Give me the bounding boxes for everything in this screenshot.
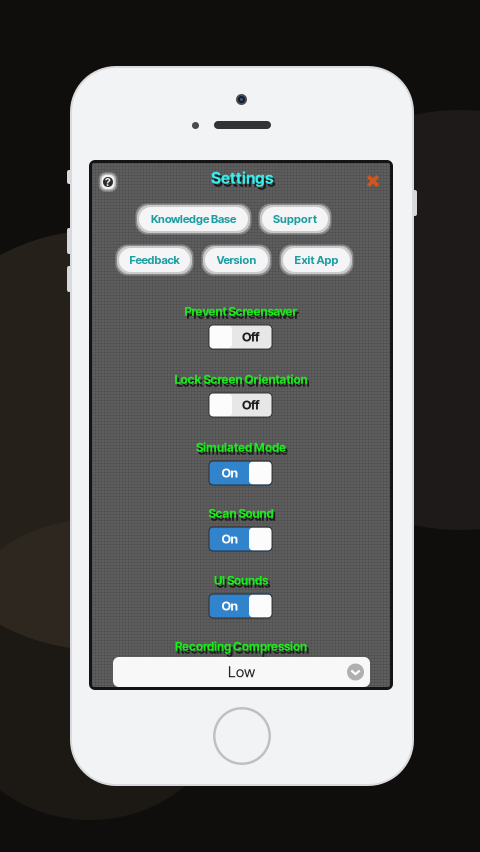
button[interactable]: On bbox=[209, 527, 272, 551]
button[interactable]: Feedback bbox=[115, 244, 194, 276]
staticText: ? bbox=[105, 175, 111, 188]
staticText: Settings bbox=[211, 168, 273, 188]
button[interactable]: Exit App bbox=[279, 244, 354, 276]
staticText: Knowledge Base bbox=[151, 212, 236, 226]
staticText: Lock Screen Orientation bbox=[176, 375, 309, 390]
button[interactable]: On bbox=[209, 461, 272, 485]
button[interactable]: Off bbox=[209, 325, 272, 349]
staticText: Version bbox=[216, 253, 256, 267]
button[interactable]: Support bbox=[258, 203, 332, 235]
staticText: Prevent Screensaver bbox=[186, 307, 299, 322]
staticText: Off bbox=[242, 329, 259, 345]
staticText: On bbox=[221, 598, 237, 614]
staticText: On bbox=[221, 531, 237, 547]
staticText: Low bbox=[228, 663, 255, 681]
staticText: Support bbox=[273, 212, 317, 226]
button[interactable]: Recording Compression: Low bbox=[113, 657, 370, 687]
staticText: Recording Compression bbox=[175, 639, 307, 654]
staticText: Prevent Screensaver bbox=[184, 304, 297, 319]
button[interactable]: Help bbox=[97, 171, 119, 193]
staticText: Feedback bbox=[129, 253, 179, 267]
button[interactable]: Version bbox=[201, 244, 272, 276]
button[interactable]: On bbox=[209, 594, 272, 618]
staticText: UI Sounds bbox=[216, 576, 270, 591]
staticText: Exit App bbox=[294, 253, 338, 267]
staticText: Recording Compression bbox=[177, 642, 309, 657]
staticText: Lock Screen Orientation bbox=[174, 372, 307, 387]
staticText: On bbox=[221, 465, 237, 481]
button[interactable]: Close bbox=[362, 170, 384, 192]
staticText: Scan Sound bbox=[208, 506, 273, 521]
staticText: UI Sounds bbox=[214, 573, 268, 588]
button[interactable]: Off bbox=[209, 393, 272, 417]
staticText: Simulated Mode bbox=[196, 440, 286, 455]
staticText: Simulated Mode bbox=[198, 443, 288, 458]
staticText: Scan Sound bbox=[210, 509, 275, 524]
staticText: Off bbox=[242, 397, 259, 413]
staticText: Settings bbox=[213, 171, 275, 191]
button[interactable]: Knowledge Base bbox=[135, 203, 252, 235]
